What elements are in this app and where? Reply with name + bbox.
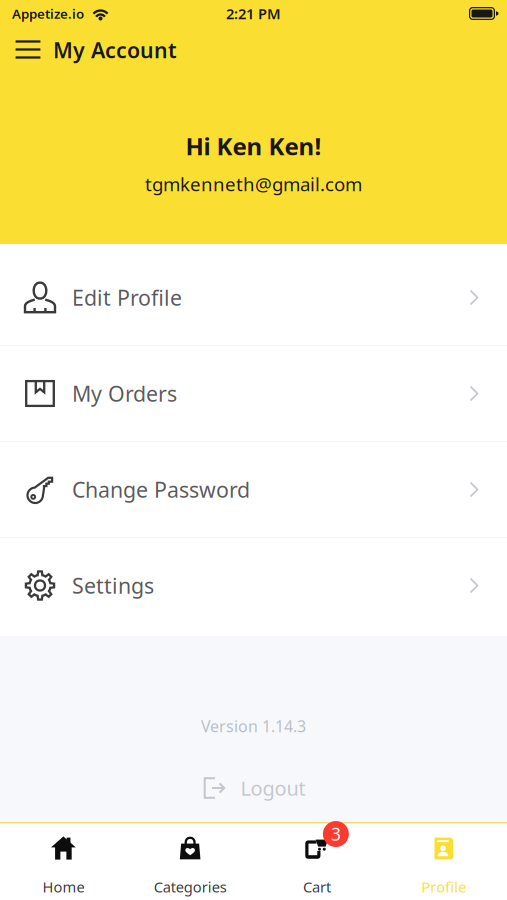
staticText: Profile <box>421 877 466 896</box>
staticText: Version 1.14.3 <box>201 715 306 737</box>
staticText: 2:21 PM <box>226 4 281 23</box>
button[interactable]: Menu <box>11 33 45 67</box>
staticText: Home <box>42 877 84 896</box>
staticText: Categories <box>154 877 227 896</box>
staticText: Appetize.io <box>12 5 84 22</box>
button[interactable]: Categories <box>127 823 254 900</box>
staticText: My Account <box>53 36 177 64</box>
staticText: Change Password <box>72 475 250 504</box>
staticText: Edit Profile <box>72 283 182 312</box>
button[interactable]: Change Password <box>0 442 507 537</box>
staticText: My Orders <box>72 379 177 408</box>
button[interactable]: My Orders <box>0 346 507 441</box>
staticText: Cart <box>303 877 331 896</box>
staticText: Hi Ken Ken! <box>185 130 321 162</box>
staticText: tgmkenneth@gmail.com <box>145 172 362 196</box>
button[interactable]: Profile <box>380 823 507 900</box>
staticText: Settings <box>72 571 154 600</box>
button[interactable]: Home <box>0 823 127 900</box>
button[interactable]: 3 <box>253 823 380 900</box>
button[interactable]: Edit Profile <box>0 250 507 345</box>
button[interactable]: Logout <box>195 771 311 805</box>
button[interactable]: Settings <box>0 538 507 633</box>
staticText: Logout <box>240 775 305 801</box>
staticText: 3 <box>331 822 341 845</box>
